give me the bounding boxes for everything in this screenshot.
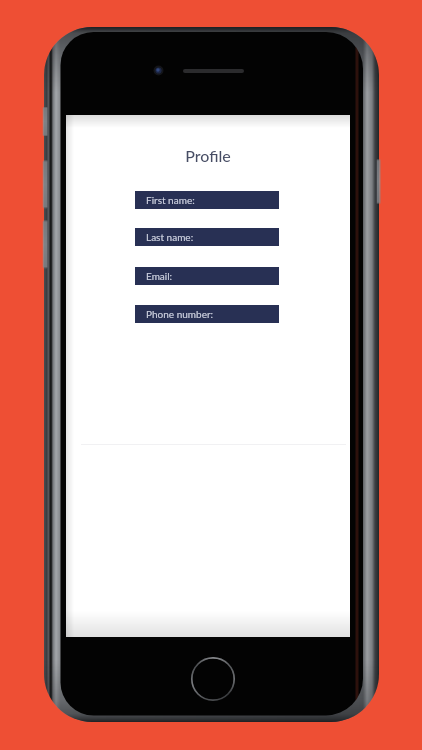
staticText: Last name: <box>146 231 194 243</box>
staticText: Email: <box>146 270 173 282</box>
button[interactable]: Last name: <box>135 228 279 246</box>
staticText: Phone number: <box>146 308 214 320</box>
staticText: First name: <box>146 194 195 206</box>
staticText: Profile <box>66 146 350 165</box>
button[interactable]: Phone number: <box>135 305 279 323</box>
button[interactable]: Email: <box>135 267 279 285</box>
button[interactable]: First name: <box>135 191 279 209</box>
